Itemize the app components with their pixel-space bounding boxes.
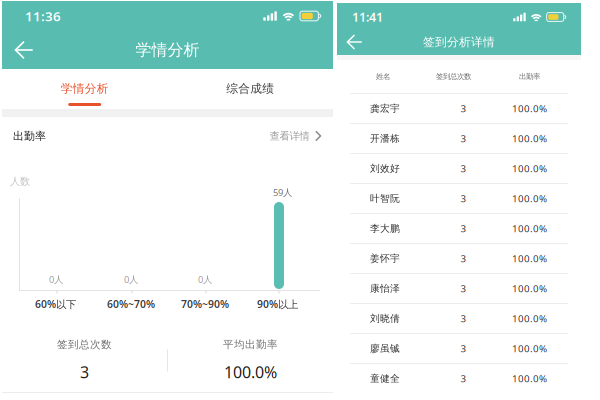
button[interactable]: Back — [2, 31, 46, 69]
staticText: 0人 — [198, 273, 212, 286]
staticText: 签到分析详情 — [423, 35, 495, 49]
staticText: 人数 — [10, 175, 30, 188]
staticText: 100.0% — [512, 222, 547, 235]
staticText: 龚宏宇 — [370, 102, 400, 115]
staticText: 学情分析 — [135, 40, 199, 60]
staticText: 学情分析 — [61, 81, 109, 96]
staticText: 刘效好 — [370, 162, 400, 175]
staticText: 廖虽铖 — [370, 342, 400, 355]
staticText: 11:36 — [25, 7, 61, 25]
staticText: 0人 — [49, 273, 63, 286]
button[interactable]: Back — [337, 29, 372, 55]
staticText: 100.0% — [224, 361, 277, 383]
staticText: 0人 — [124, 273, 138, 286]
staticText: 3 — [460, 372, 466, 385]
staticText: 100.0% — [512, 252, 547, 265]
staticText: 100.0% — [512, 312, 547, 325]
staticText: 签到总次数 — [57, 338, 112, 351]
staticText: 3 — [460, 222, 466, 235]
staticText: 3 — [460, 192, 466, 205]
button[interactable]: 学情分析 — [2, 69, 167, 109]
staticText: 开潘栋 — [370, 132, 400, 145]
staticText: 100.0% — [512, 372, 547, 385]
staticText: 100.0% — [512, 132, 547, 145]
button[interactable]: 综合成绩 — [167, 69, 333, 109]
staticText: 100.0% — [512, 102, 547, 115]
staticText: 出勤率 — [13, 129, 46, 143]
staticText: 3 — [460, 162, 466, 175]
staticText: 综合成绩 — [226, 81, 274, 96]
staticText: 平均出勤率 — [223, 338, 278, 351]
staticText: 100.0% — [512, 162, 547, 175]
staticText: 3 — [460, 102, 466, 115]
staticText: 90%以上 — [257, 297, 298, 311]
staticText: 签到总次数 — [436, 72, 471, 81]
staticText: 3 — [460, 252, 466, 265]
staticText: 3 — [80, 361, 89, 383]
staticText: 姓名 — [376, 72, 390, 81]
staticText: 60%~70% — [107, 297, 155, 311]
staticText: 11:41 — [352, 8, 383, 26]
staticText: 100.0% — [512, 192, 547, 205]
staticText: 童健全 — [370, 372, 400, 385]
staticText: 叶智阮 — [370, 192, 400, 205]
staticText: 3 — [460, 312, 466, 325]
staticText: 姜怀宇 — [370, 252, 400, 265]
staticText: 3 — [460, 132, 466, 145]
staticText: 100.0% — [512, 282, 547, 295]
staticText: 3 — [460, 342, 466, 355]
button[interactable]: 出勤率 — [2, 117, 333, 155]
staticText: 出勤率 — [519, 72, 540, 81]
staticText: 查看详情 — [269, 129, 309, 142]
staticText: 70%~90% — [181, 297, 229, 311]
staticText: 59人 — [273, 186, 292, 199]
staticText: 100.0% — [512, 342, 547, 355]
staticText: 3 — [460, 282, 466, 295]
staticText: 康怡泽 — [370, 282, 400, 295]
staticText: 60%以下 — [35, 297, 76, 311]
staticText: 刘晓倩 — [370, 312, 400, 325]
staticText: 李大鹏 — [370, 222, 400, 235]
